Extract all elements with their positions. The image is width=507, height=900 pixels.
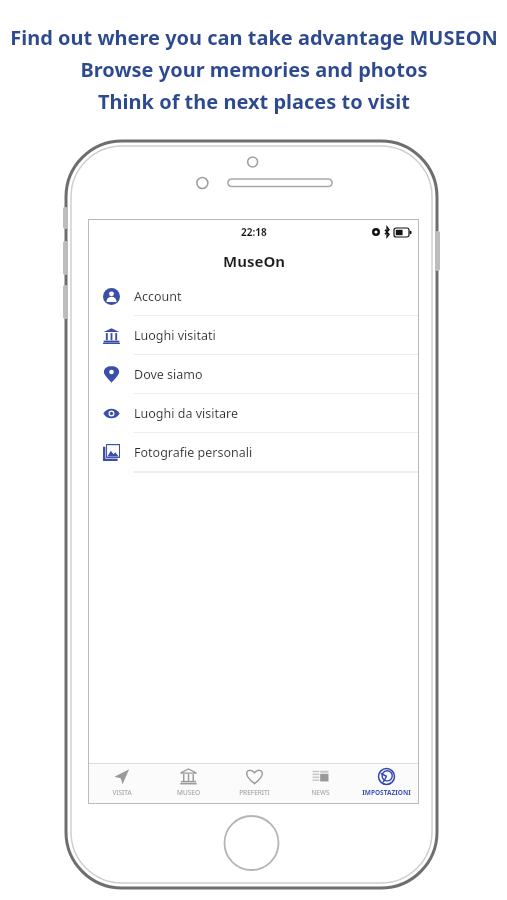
staticText: Account [134, 288, 182, 305]
staticText: PREFERITI [239, 788, 270, 797]
staticText: IMPOSTAZIONI [362, 788, 411, 797]
button[interactable]: Account [88, 277, 419, 316]
staticText: Find out where you can take advantage MU… [10, 24, 498, 51]
button[interactable]: MUSEO [155, 764, 221, 804]
staticText: VISITA [112, 788, 132, 797]
button[interactable]: IMPOSTAZIONI [353, 764, 419, 804]
staticText: MuseOn [223, 251, 285, 271]
button[interactable]: Dove siamo [88, 355, 419, 394]
staticText: Fotografie personali [134, 444, 253, 461]
staticText: MUSEO [177, 788, 200, 797]
button[interactable]: Luoghi da visitare [88, 394, 419, 433]
staticText: 22:18 [241, 225, 267, 239]
staticText: Luoghi da visitare [134, 405, 238, 422]
button[interactable]: VISITA [88, 764, 155, 804]
staticText: NEWS [311, 788, 330, 797]
staticText: Dove siamo [134, 366, 203, 383]
button[interactable]: Fotografie personali [88, 433, 419, 472]
button[interactable]: Luoghi visitati [88, 316, 419, 355]
staticText: Browse your memories and photos [80, 56, 428, 83]
staticText: Luoghi visitati [134, 327, 216, 344]
button[interactable]: NEWS [287, 764, 353, 804]
staticText: Think of the next places to visit [98, 88, 410, 115]
button[interactable]: PREFERITI [221, 764, 287, 804]
